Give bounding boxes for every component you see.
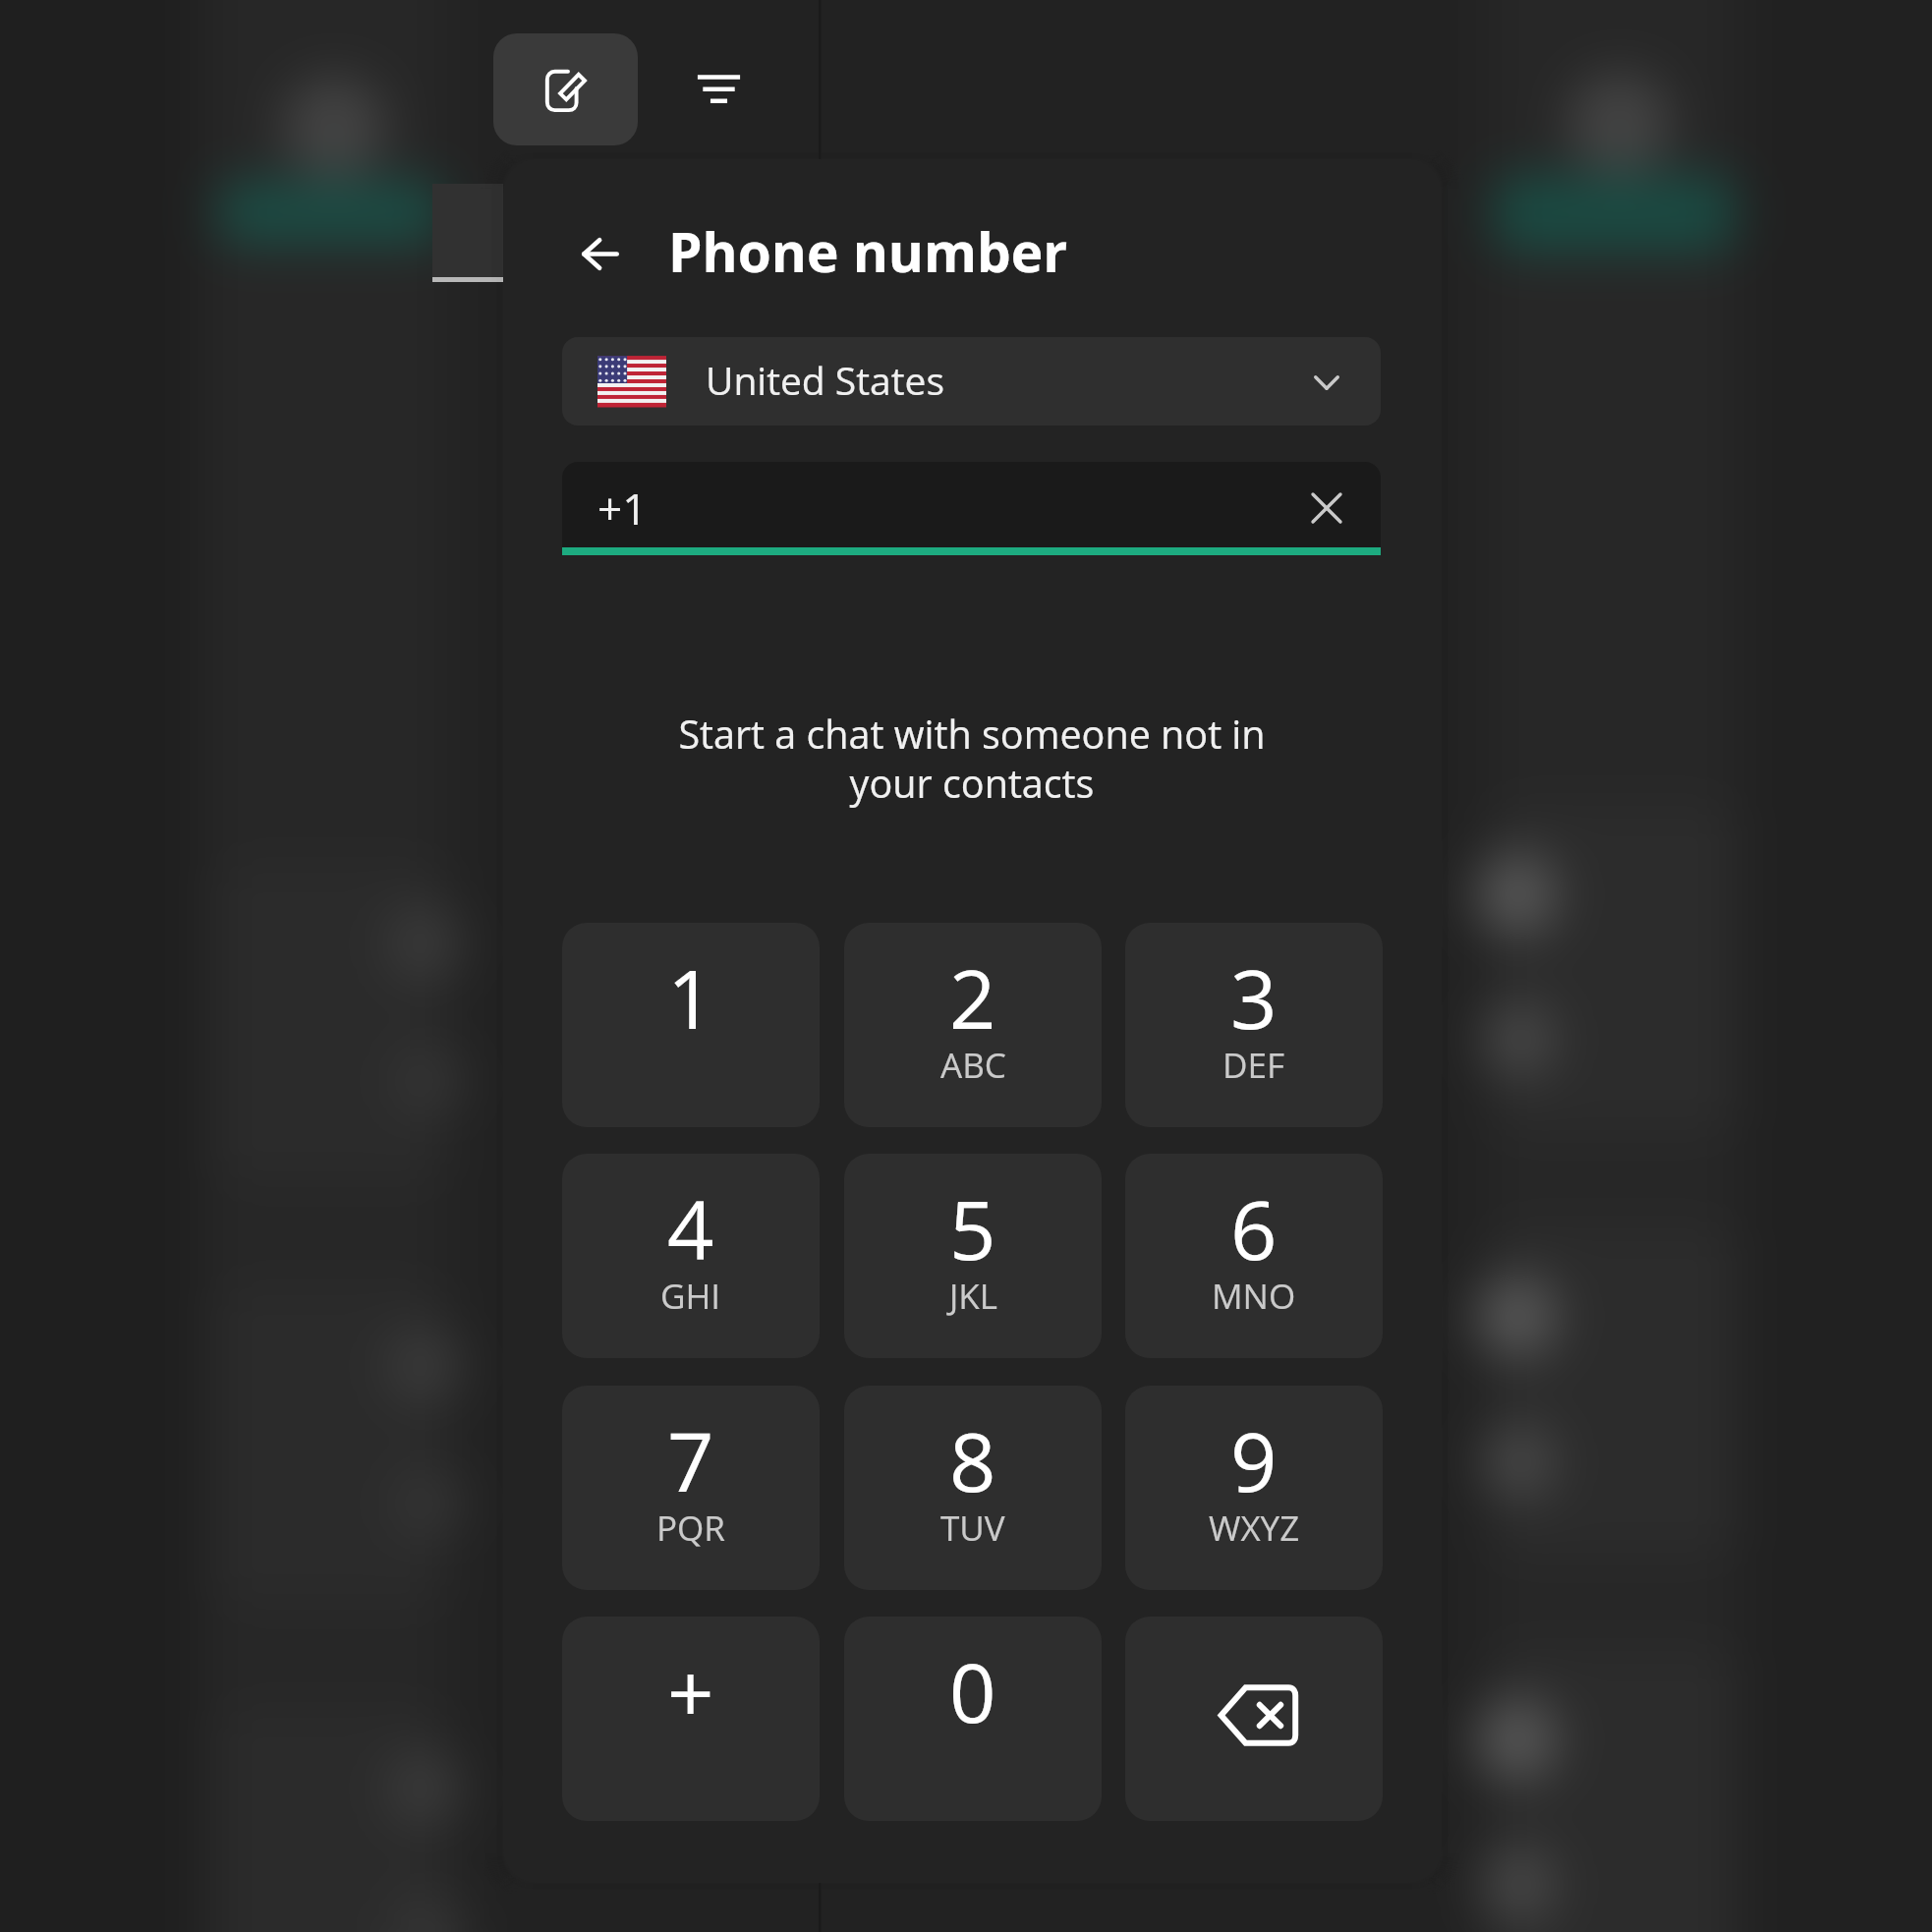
button[interactable]: 6: [1125, 1154, 1383, 1358]
staticText: PQR: [656, 1505, 725, 1552]
staticText: 5: [949, 1172, 996, 1283]
button[interactable]: New chat: [493, 33, 638, 145]
staticText: United States: [706, 354, 944, 406]
staticText: DEF: [1222, 1042, 1285, 1089]
staticText: ABC: [940, 1042, 1006, 1089]
button[interactable]: +1: [562, 462, 1381, 548]
button[interactable]: 2: [844, 923, 1102, 1127]
staticText: TUV: [940, 1505, 1005, 1552]
button[interactable]: 5: [844, 1154, 1102, 1358]
button[interactable]: 9: [1125, 1386, 1383, 1590]
staticText: GHI: [660, 1273, 721, 1320]
staticText: 2: [949, 941, 996, 1052]
staticText: +: [667, 1635, 714, 1746]
staticText: Start a chat with someone not in your co…: [579, 708, 1365, 810]
staticText: 7: [667, 1404, 714, 1515]
button[interactable]: Backspace: [1125, 1617, 1383, 1821]
button[interactable]: Back: [557, 207, 644, 300]
button[interactable]: 8: [844, 1386, 1102, 1590]
staticText: 3: [1230, 941, 1278, 1052]
button[interactable]: Filter chats: [672, 44, 765, 133]
button[interactable]: United States: [562, 337, 1381, 426]
staticText: 8: [949, 1404, 996, 1515]
staticText: 0: [949, 1635, 996, 1746]
staticText: WXYZ: [1209, 1505, 1300, 1552]
button[interactable]: 4: [562, 1154, 820, 1358]
button[interactable]: 3: [1125, 923, 1383, 1127]
staticText: Phone number: [668, 214, 1068, 288]
button[interactable]: +: [562, 1617, 820, 1821]
staticText: +1: [597, 479, 648, 538]
button[interactable]: 0: [844, 1617, 1102, 1821]
button[interactable]: 1: [562, 923, 820, 1127]
button[interactable]: Clear: [1298, 480, 1355, 537]
staticText: JKL: [949, 1273, 997, 1320]
staticText: MNO: [1212, 1273, 1296, 1320]
button[interactable]: 7: [562, 1386, 820, 1590]
staticText: 9: [1230, 1404, 1278, 1515]
staticText: 6: [1230, 1172, 1278, 1283]
staticText: 4: [667, 1172, 714, 1283]
staticText: 1: [667, 941, 714, 1052]
